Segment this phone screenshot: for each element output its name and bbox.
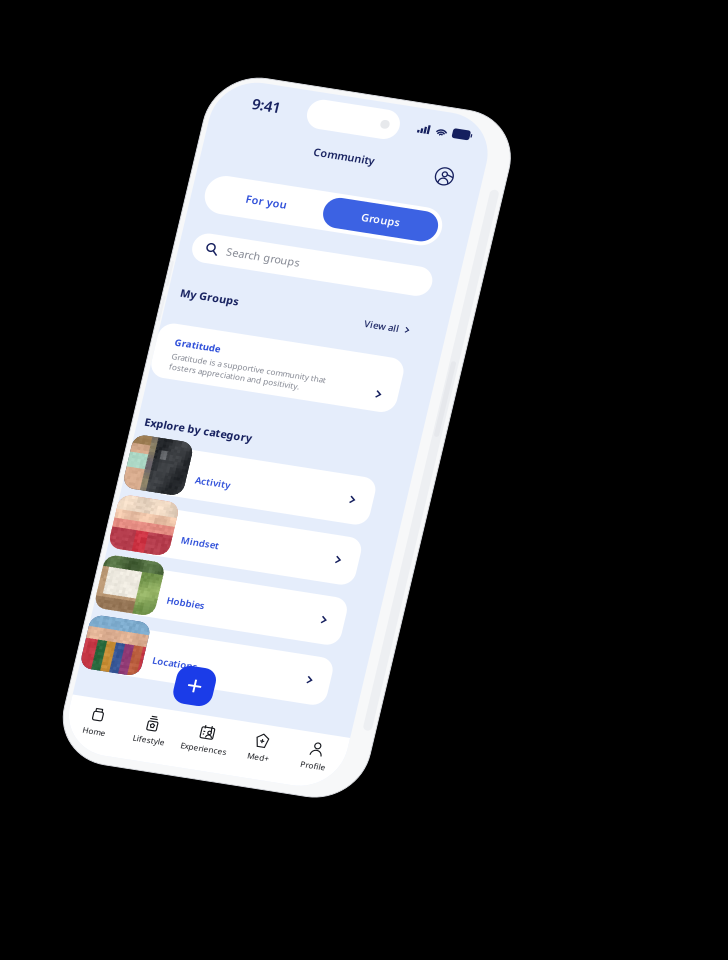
button[interactable]: Med+ bbox=[171, 651, 225, 682]
staticText: Locations bbox=[74, 590, 119, 602]
button[interactable]: Mindset bbox=[5, 436, 282, 498]
button[interactable]: Experiences bbox=[116, 651, 171, 682]
staticText: Gratitude is a supportive community that… bbox=[23, 285, 177, 307]
staticText: Lifestyle bbox=[73, 671, 105, 682]
button[interactable]: Create group bbox=[101, 596, 140, 635]
button[interactable]: Search groups bbox=[18, 163, 257, 193]
staticText: Hobbies bbox=[74, 528, 112, 540]
button[interactable]: Gratitude bbox=[5, 258, 250, 314]
button[interactable]: Hobbies bbox=[5, 498, 282, 560]
button[interactable]: Groups bbox=[136, 107, 250, 138]
staticText: Med+ bbox=[187, 671, 209, 682]
staticText: Experiences bbox=[120, 671, 166, 682]
button[interactable]: Account bbox=[230, 55, 259, 84]
staticText: Groups bbox=[174, 115, 212, 130]
button[interactable]: Lifestyle bbox=[62, 651, 116, 682]
button[interactable]: Locations bbox=[5, 560, 282, 622]
button[interactable]: Activity bbox=[5, 374, 282, 436]
